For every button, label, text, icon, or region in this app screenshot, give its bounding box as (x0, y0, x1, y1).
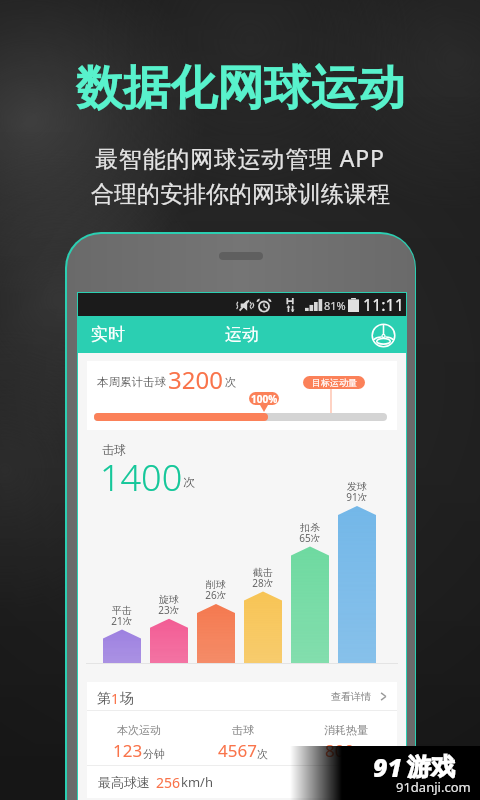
staticText: 26次 (205, 588, 227, 599)
button[interactable]: Profile (368, 320, 398, 350)
staticText: 削球 (206, 578, 226, 589)
staticText: 运动 (225, 324, 259, 345)
staticText: 游戏 (407, 752, 455, 782)
staticText: 合理的安排你的网球训练课程 (91, 180, 390, 209)
staticText: 第 (97, 690, 111, 708)
staticText: 23次 (158, 603, 180, 614)
staticText: 扣杀 (300, 521, 320, 532)
staticText: 本周累计击球 (97, 375, 166, 389)
button[interactable]: 第 (87, 682, 397, 710)
button[interactable]: 实时 (78, 316, 406, 353)
staticText: 1400 (100, 453, 183, 502)
staticText: 最智能的网球运动管理 APP (95, 142, 385, 173)
staticText: 123 (113, 739, 143, 762)
staticText: 旋球 (159, 593, 179, 604)
staticText: 击球 (232, 723, 254, 737)
staticText: 分钟 (143, 747, 165, 761)
staticText: 81% (324, 298, 346, 313)
staticText: 本次运动 (117, 723, 161, 737)
staticText: 3200 (168, 363, 223, 396)
staticText: 800 (325, 739, 355, 762)
staticText: 4567 (218, 739, 257, 762)
staticText: 91次 (346, 490, 368, 501)
staticText: 次 (257, 747, 268, 761)
staticText: 11:11 (363, 294, 404, 316)
staticText: 平击 (112, 604, 132, 615)
staticText: 21次 (111, 614, 133, 625)
staticText: 100% (251, 392, 278, 405)
staticText: 击球 (102, 442, 126, 457)
staticText: 目标运动量 (312, 377, 357, 388)
staticText: 发球 (347, 480, 367, 491)
staticText: 次 (225, 375, 237, 389)
staticText: 实时 (91, 324, 125, 345)
staticText: 1 (111, 689, 120, 708)
staticText: 65次 (299, 531, 321, 542)
staticText: 查看详情 (331, 690, 371, 703)
staticText: 场 (120, 690, 134, 708)
staticText: 次 (183, 474, 195, 489)
staticText: 256 (156, 773, 181, 792)
staticText: 91danji.com (396, 778, 471, 796)
staticText: 28次 (252, 576, 274, 587)
staticText: km/h (181, 773, 213, 791)
staticText: 消耗热量 (324, 723, 368, 737)
staticText: 截击 (253, 566, 273, 577)
staticText: 最高球速 (98, 774, 150, 790)
staticText: 91 (373, 750, 403, 784)
staticText: 数据化网球运动 (76, 59, 405, 118)
